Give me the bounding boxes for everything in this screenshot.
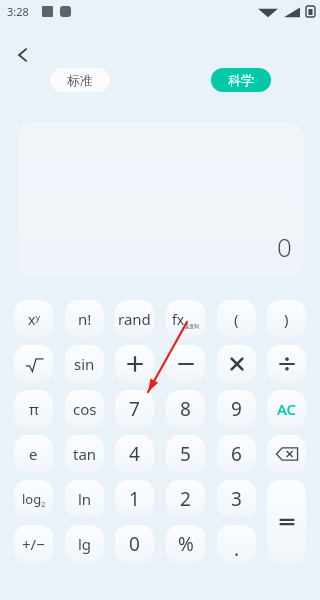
button[interactable]: ln bbox=[65, 480, 104, 518]
button[interactable]: Divide bbox=[267, 345, 306, 383]
staticText: tan bbox=[73, 444, 97, 464]
staticText: 3 bbox=[231, 486, 242, 512]
button[interactable]: log base 2 bbox=[14, 480, 53, 518]
button[interactable]: sin bbox=[65, 345, 104, 383]
button[interactable]: n! bbox=[65, 300, 104, 338]
staticText: xy bbox=[28, 310, 40, 329]
button[interactable]: cos bbox=[65, 390, 104, 428]
staticText: 6 bbox=[231, 441, 242, 467]
button[interactable]: Equals bbox=[267, 480, 306, 563]
button[interactable]: lg bbox=[65, 525, 104, 563]
button[interactable]: Angle unit radians bbox=[166, 300, 205, 338]
staticText: 科学 bbox=[228, 72, 254, 88]
button[interactable]: 3 bbox=[217, 480, 256, 518]
button[interactable]: 7 bbox=[115, 390, 154, 428]
button[interactable]: Minus bbox=[166, 345, 205, 383]
button[interactable]: 科学 bbox=[211, 68, 271, 92]
staticText: 标准 bbox=[67, 72, 93, 88]
button[interactable]: 5 bbox=[166, 435, 205, 473]
button[interactable]: x to the power y bbox=[14, 300, 53, 338]
staticText: 1 bbox=[129, 486, 140, 512]
button[interactable]: rand bbox=[115, 300, 154, 338]
staticText: 0 bbox=[277, 229, 292, 264]
button[interactable]: y-th root of x bbox=[14, 345, 53, 383]
button[interactable]: 0 bbox=[115, 525, 154, 563]
button[interactable]: Multiply bbox=[217, 345, 256, 383]
staticText: 5 bbox=[180, 441, 191, 467]
button[interactable]: 4 bbox=[115, 435, 154, 473]
staticText: ) bbox=[284, 309, 289, 329]
staticText: 2 bbox=[180, 486, 191, 512]
button[interactable]: 9 bbox=[217, 390, 256, 428]
staticText: 7 bbox=[129, 396, 140, 422]
button[interactable]: Backspace bbox=[267, 435, 306, 473]
button[interactable]: 1 bbox=[115, 480, 154, 518]
button[interactable]: e bbox=[14, 435, 53, 473]
staticText: π bbox=[29, 399, 39, 419]
staticText: +/− bbox=[22, 534, 45, 554]
button[interactable]: Decimal point bbox=[217, 525, 256, 563]
button[interactable]: % bbox=[166, 525, 205, 563]
staticText: . bbox=[234, 536, 240, 562]
button[interactable]: Back bbox=[8, 40, 38, 70]
button[interactable]: ) bbox=[267, 300, 306, 338]
button[interactable]: tan bbox=[65, 435, 104, 473]
button[interactable]: AC bbox=[267, 390, 306, 428]
staticText: 4 bbox=[129, 441, 140, 467]
button[interactable]: 8 bbox=[166, 390, 205, 428]
staticText: 0 bbox=[129, 531, 140, 557]
staticText: n! bbox=[78, 309, 92, 329]
staticText: e bbox=[29, 444, 38, 464]
staticText: ln bbox=[78, 489, 92, 509]
button[interactable]: 2 bbox=[166, 480, 205, 518]
staticText: % bbox=[178, 531, 194, 557]
staticText: rand bbox=[118, 309, 151, 329]
button[interactable]: 6 bbox=[217, 435, 256, 473]
button[interactable]: Plus bbox=[115, 345, 154, 383]
staticText: lg bbox=[78, 534, 92, 554]
staticText: cos bbox=[73, 399, 97, 419]
staticText: 9 bbox=[231, 396, 242, 422]
staticText: AC bbox=[277, 399, 297, 419]
button[interactable]: Plus minus sign bbox=[14, 525, 53, 563]
staticText: 8 bbox=[180, 396, 191, 422]
button[interactable]: ( bbox=[217, 300, 256, 338]
staticText: sin bbox=[74, 354, 95, 374]
staticText: 3:28 bbox=[7, 4, 29, 19]
button[interactable]: π bbox=[14, 390, 53, 428]
staticText: ( bbox=[234, 309, 239, 329]
staticText: log2 bbox=[22, 490, 46, 509]
button[interactable]: 标准 bbox=[50, 68, 110, 92]
staticText: fx弧度制 bbox=[172, 310, 200, 329]
